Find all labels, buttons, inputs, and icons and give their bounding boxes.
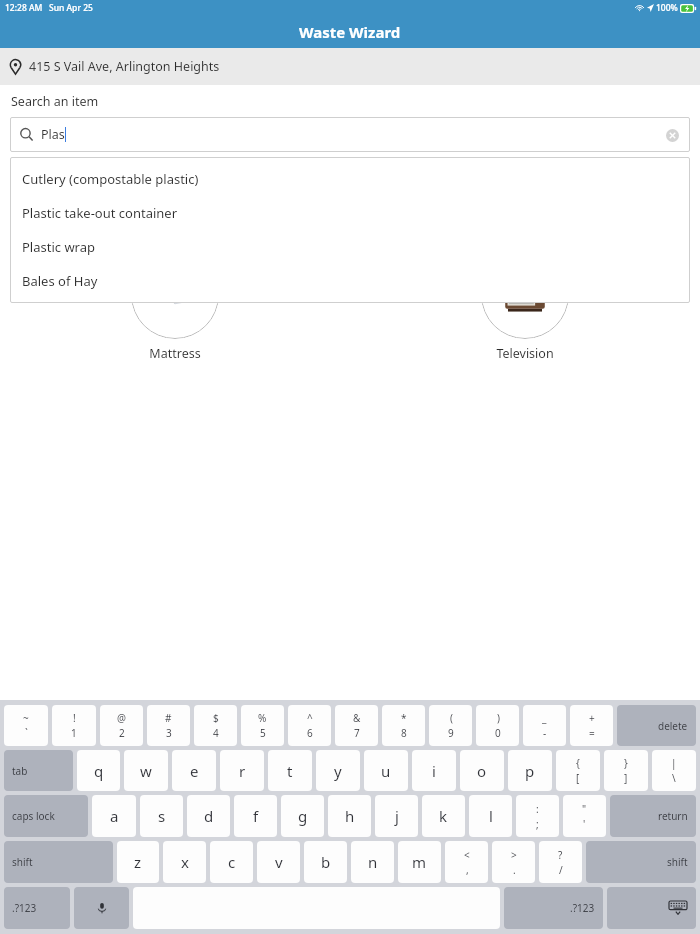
staticText: 0 — [495, 726, 501, 740]
button[interactable]: y — [316, 750, 360, 791]
button[interactable]: Mattress — [100, 251, 250, 362]
button[interactable]: v — [257, 841, 300, 883]
button[interactable]: f — [234, 795, 277, 837]
button[interactable]: Yard and — [100, 105, 250, 233]
button[interactable]: Clear search — [660, 123, 684, 147]
staticText: q — [94, 761, 104, 781]
button[interactable]: Plastic wrap — [10, 230, 690, 264]
button[interactable]: l — [469, 795, 512, 837]
staticText: b — [321, 852, 331, 872]
button[interactable]: delete — [617, 705, 696, 746]
button[interactable]: shift — [4, 841, 113, 883]
button[interactable]: ( — [429, 705, 472, 746]
button[interactable]: $ — [194, 705, 237, 746]
staticText: ! — [73, 711, 76, 725]
button[interactable]: Furniture — [450, 105, 600, 216]
staticText: j — [395, 806, 399, 826]
staticText: k — [439, 806, 448, 826]
button[interactable]: k — [422, 795, 465, 837]
staticText: { — [576, 756, 580, 770]
button[interactable]: & — [335, 705, 378, 746]
button[interactable]: Plas — [10, 117, 690, 152]
button[interactable]: + — [570, 705, 613, 746]
staticText: ( — [450, 711, 453, 725]
button[interactable]: m — [398, 841, 441, 883]
staticText: r — [239, 761, 246, 781]
button[interactable]: @ — [100, 705, 143, 746]
button[interactable]: u — [364, 750, 408, 791]
button[interactable]: .?123 — [4, 887, 70, 929]
button[interactable]: x — [163, 841, 206, 883]
button[interactable]: " — [563, 795, 606, 837]
button[interactable]: ! — [52, 705, 96, 746]
button[interactable]: Bales of Hay — [10, 264, 690, 298]
button[interactable]: q — [77, 750, 120, 791]
staticText: - — [543, 726, 547, 740]
staticText: 12:28 AM — [5, 2, 43, 14]
button[interactable]: c — [210, 841, 253, 883]
button[interactable]: | — [652, 750, 696, 791]
staticText: ; — [536, 817, 539, 831]
button[interactable]: > — [492, 841, 535, 883]
button[interactable]: : — [516, 795, 559, 837]
staticText: 6 — [307, 726, 313, 740]
staticText: $ — [213, 711, 219, 725]
button[interactable]: Dictation — [74, 887, 129, 929]
button[interactable]: 415 S Vail Ave, Arlington Heights — [0, 48, 700, 85]
staticText: m — [412, 852, 427, 872]
staticText: * — [401, 711, 407, 725]
button[interactable]: shift — [586, 841, 696, 883]
button[interactable]: s — [140, 795, 183, 837]
staticText: h — [345, 806, 355, 826]
button[interactable]: z — [117, 841, 159, 883]
button[interactable]: w — [124, 750, 168, 791]
button[interactable]: ) — [476, 705, 519, 746]
staticText: ^ — [307, 711, 313, 725]
staticText: t — [287, 761, 293, 781]
staticText: v — [275, 852, 283, 872]
button[interactable]: return — [610, 795, 696, 837]
staticText: > — [511, 848, 517, 862]
button[interactable]: h — [328, 795, 371, 837]
staticText: Cutlery (compostable plastic) — [22, 170, 199, 188]
button[interactable]: tab — [4, 750, 73, 791]
staticText: i — [432, 761, 436, 781]
button[interactable]: j — [375, 795, 418, 837]
button[interactable]: Plastic take-out container — [10, 196, 690, 230]
button[interactable]: .?123 — [504, 887, 603, 929]
button[interactable]: i — [412, 750, 456, 791]
button[interactable]: < — [445, 841, 488, 883]
button[interactable]: caps lock — [4, 795, 88, 837]
button[interactable]: Hide keyboard — [607, 887, 696, 929]
button[interactable]: b — [304, 841, 347, 883]
button[interactable]: p — [508, 750, 552, 791]
button[interactable]: Television — [450, 251, 600, 362]
staticText: delete — [658, 719, 688, 733]
button[interactable]: d — [187, 795, 230, 837]
button[interactable]: # — [147, 705, 190, 746]
staticText: + — [589, 711, 595, 725]
button[interactable]: a — [92, 795, 136, 837]
button[interactable]: * — [382, 705, 425, 746]
staticText: ? — [558, 848, 563, 862]
button[interactable]: r — [220, 750, 264, 791]
button[interactable]: } — [604, 750, 648, 791]
button[interactable]: ? — [539, 841, 582, 883]
staticText: ' — [583, 817, 586, 831]
staticText: : — [536, 802, 539, 816]
button[interactable]: o — [460, 750, 504, 791]
button[interactable]: Cutlery (compostable plastic) — [10, 162, 690, 196]
button[interactable]: t — [268, 750, 312, 791]
button[interactable]: { — [556, 750, 600, 791]
button[interactable]: ~ — [4, 705, 48, 746]
staticText: < — [464, 848, 470, 862]
button[interactable]: ^ — [288, 705, 331, 746]
staticText: 5 — [260, 726, 266, 740]
staticText: p — [525, 761, 535, 781]
button[interactable]: % — [241, 705, 284, 746]
button[interactable]: _ — [523, 705, 566, 746]
button[interactable]: g — [281, 795, 324, 837]
button[interactable]: e — [172, 750, 216, 791]
button[interactable]: n — [351, 841, 394, 883]
